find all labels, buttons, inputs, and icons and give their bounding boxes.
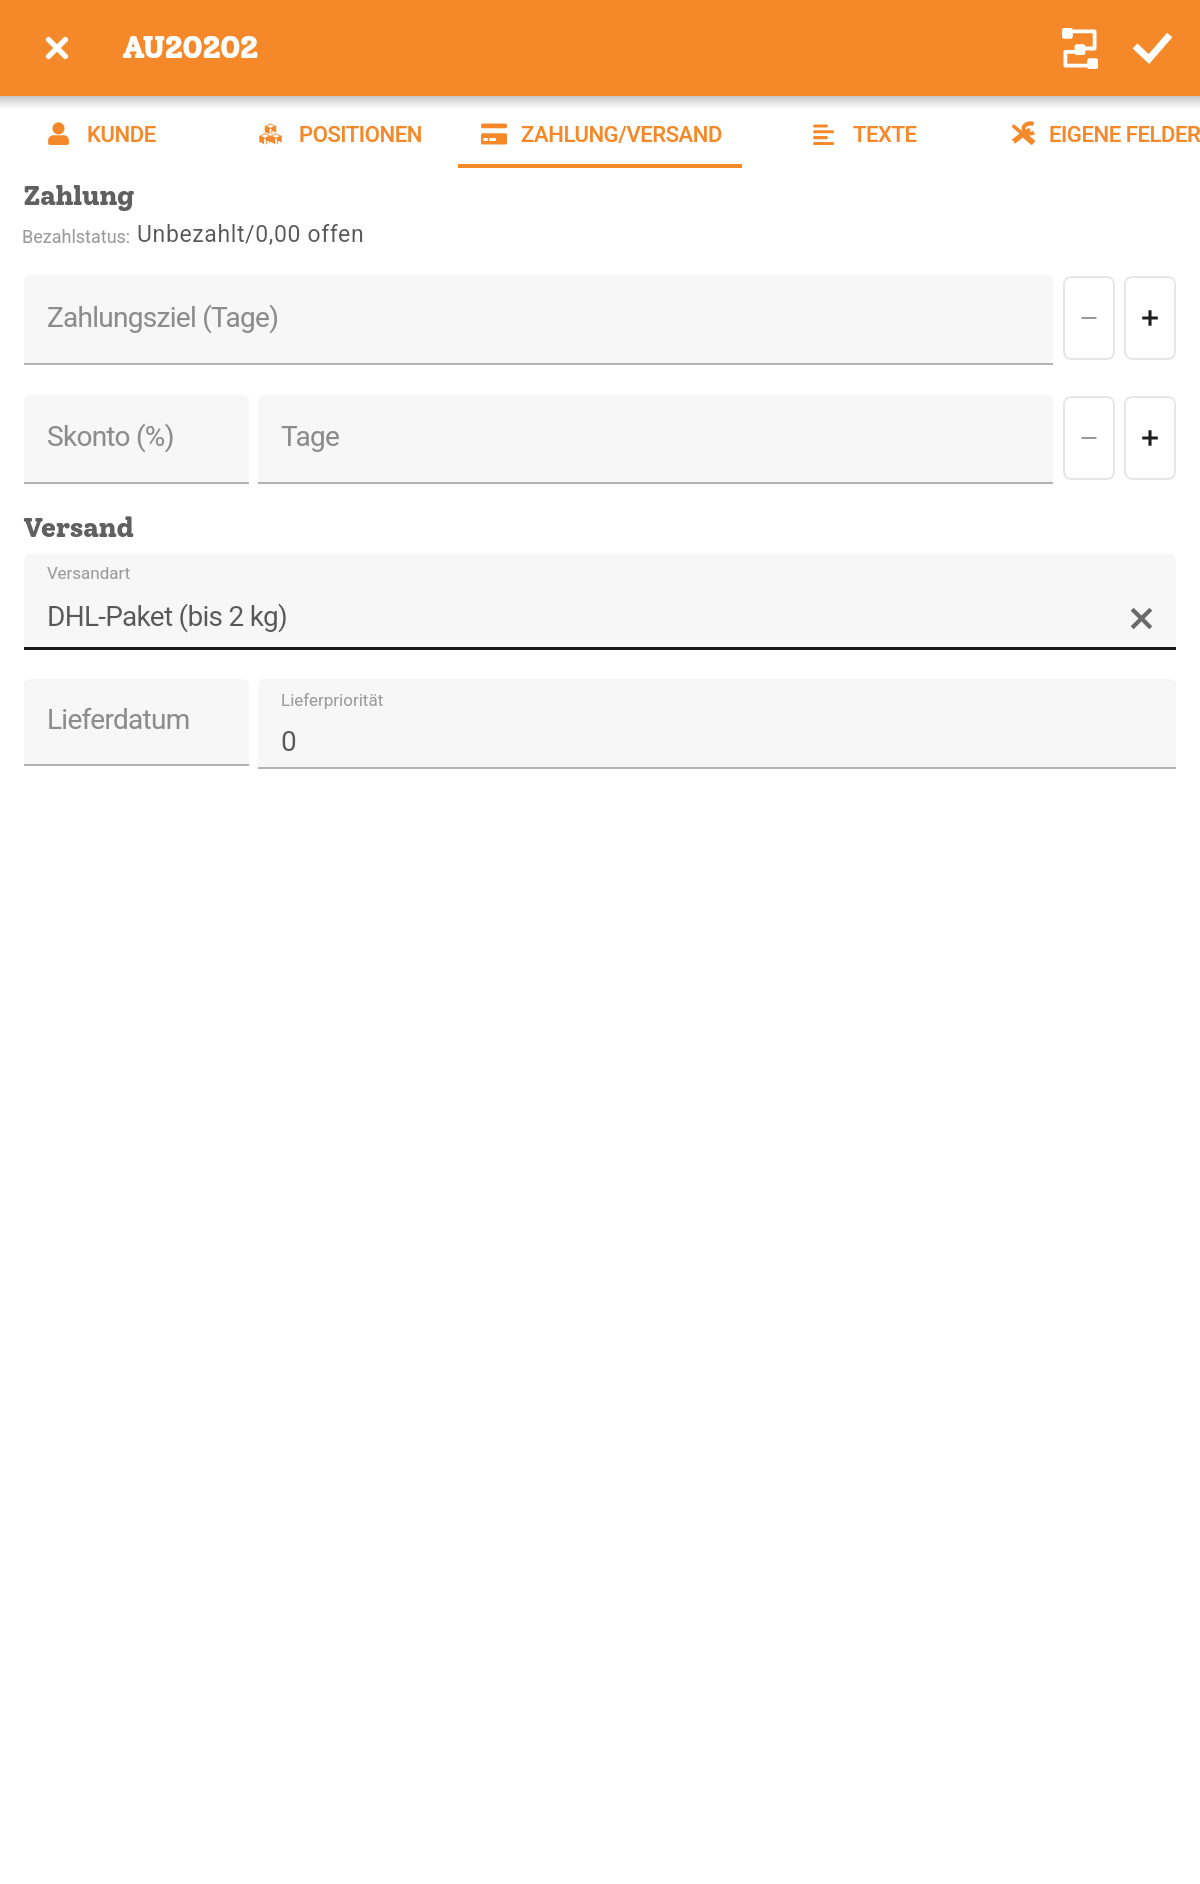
staticText: Lieferpriorität [281, 690, 384, 710]
staticText: ZAHLUNG/VERSAND [521, 122, 722, 148]
button[interactable]: KUNDE [26, 103, 177, 165]
staticText: DHL-Paket (bis 2 kg) [47, 600, 287, 633]
button[interactable]: Lieferpriorität [258, 679, 1176, 767]
button[interactable]: Lieferdatum [24, 679, 249, 764]
button[interactable]: POSITIONEN [238, 103, 443, 165]
button[interactable]: Verringern [1063, 396, 1115, 480]
staticText: Unbezahlt/0,00 offen [137, 221, 365, 248]
staticText: TEXTE [853, 122, 917, 148]
staticText: Zahlungsziel (Tage) [47, 301, 279, 334]
button[interactable]: Skonto (%) [24, 395, 249, 482]
staticText: POSITIONEN [299, 122, 422, 148]
button[interactable]: ZAHLUNG/VERSAND [460, 103, 743, 165]
button[interactable]: Verringern [1063, 276, 1115, 360]
button[interactable]: TEXTE [792, 103, 938, 165]
staticText: EIGENE FELDER [1049, 122, 1200, 148]
staticText: 0 [281, 725, 297, 758]
button[interactable]: Workflow [1044, 12, 1116, 84]
button[interactable]: Versandart [24, 554, 1176, 647]
staticText: Zahlung [23, 178, 134, 212]
button[interactable]: EIGENE FELDER [988, 103, 1200, 165]
staticText: Skonto (%) [47, 420, 174, 453]
button[interactable]: Erhoehen [1124, 396, 1176, 480]
staticText: Bezahlstatus: [22, 226, 131, 247]
staticText: AU20202 [122, 29, 258, 66]
button[interactable]: Loeschen [1117, 594, 1165, 642]
button[interactable]: Tage [258, 395, 1053, 482]
staticText: Versand [23, 510, 134, 544]
button[interactable]: Speichern [1116, 12, 1188, 84]
button[interactable]: Zahlungsziel (Tage) [24, 275, 1053, 363]
staticText: Tage [281, 420, 340, 453]
staticText: Lieferdatum [47, 703, 190, 736]
staticText: KUNDE [87, 122, 156, 148]
button[interactable]: Schliessen [21, 12, 93, 84]
staticText: Versandart [47, 563, 131, 583]
button[interactable]: Erhoehen [1124, 276, 1176, 360]
